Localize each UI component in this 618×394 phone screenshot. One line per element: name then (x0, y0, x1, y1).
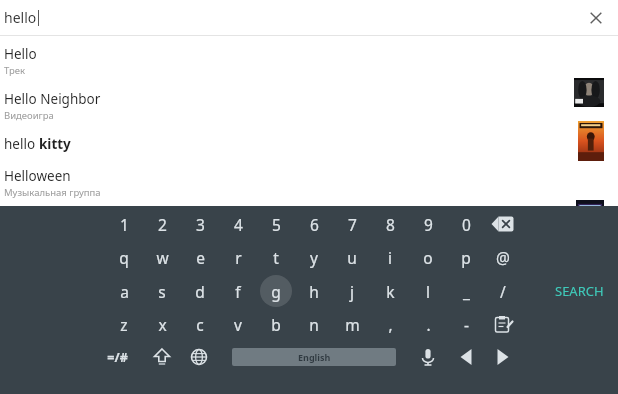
button[interactable]: w (143, 240, 181, 274)
staticText: j (350, 281, 354, 302)
button[interactable]: f (219, 274, 257, 308)
button[interactable]: Backspace (486, 211, 520, 237)
button[interactable]: SEARCH (540, 275, 618, 307)
staticText: y (310, 247, 318, 268)
staticText: 3 (196, 214, 205, 235)
staticText: English (298, 351, 331, 363)
staticText: Видеоигра (4, 109, 54, 122)
button[interactable]: Hello Neighbor (0, 86, 618, 130)
button[interactable]: . (409, 307, 447, 341)
button[interactable]: g (257, 274, 295, 308)
button[interactable]: 8 (371, 207, 409, 241)
staticText: 0 (462, 214, 471, 235)
button[interactable]: =/# (98, 340, 136, 374)
staticText: SEARCH (555, 282, 604, 300)
staticText: 6 (310, 214, 319, 235)
button[interactable]: o (409, 240, 447, 274)
staticText: 8 (386, 214, 395, 235)
button[interactable]: Clear search (574, 0, 618, 35)
button[interactable]: r (219, 240, 257, 274)
staticText: hello (4, 135, 39, 153)
button[interactable]: n (295, 307, 333, 341)
staticText: s (158, 281, 166, 302)
button[interactable]: 3 (181, 207, 219, 241)
button[interactable]: 9 (409, 207, 447, 241)
button[interactable]: / (484, 274, 522, 308)
staticText: i (388, 247, 392, 268)
button[interactable]: e (181, 240, 219, 274)
button[interactable]: 2 (143, 207, 181, 241)
staticText: t (273, 247, 279, 268)
staticText: z (120, 314, 128, 335)
button[interactable]: 0 (447, 207, 485, 241)
button[interactable]: @ (484, 240, 522, 274)
staticText: m (345, 314, 360, 335)
staticText: kitty (39, 135, 71, 153)
button[interactable]: u (333, 240, 371, 274)
button[interactable]: q (105, 240, 143, 274)
staticText: v (234, 314, 242, 335)
button[interactable]: English (232, 348, 396, 366)
staticText: f (235, 281, 241, 302)
button[interactable]: j (333, 274, 371, 308)
staticText: hello (4, 8, 37, 27)
staticText: a (120, 281, 129, 302)
button[interactable]: Hello (0, 41, 618, 85)
button[interactable]: k (371, 274, 409, 308)
button[interactable]: Change language (184, 343, 214, 371)
button[interactable]: s (143, 274, 181, 308)
staticText: 9 (424, 214, 433, 235)
button[interactable]: 1 (105, 207, 143, 241)
button[interactable]: - (447, 307, 485, 341)
button[interactable]: 6 (295, 207, 333, 241)
button[interactable]: z (105, 307, 143, 341)
staticText: l (426, 281, 430, 302)
button[interactable]: 4 (219, 207, 257, 241)
button[interactable]: Move right (488, 343, 518, 371)
button[interactable]: c (181, 307, 219, 341)
button[interactable]: Move left (451, 343, 481, 371)
staticText: Helloween (4, 167, 71, 185)
button[interactable]: h (295, 274, 333, 308)
button[interactable]: b (257, 307, 295, 341)
button[interactable]: m (333, 307, 371, 341)
button[interactable]: hello (0, 0, 574, 35)
staticText: 7 (348, 214, 357, 235)
staticText: 2 (158, 214, 167, 235)
button[interactable]: a (105, 274, 143, 308)
staticText: . (426, 314, 431, 335)
staticText: @ (496, 247, 510, 268)
button[interactable]: Shift (147, 343, 177, 371)
button[interactable]: t (257, 240, 295, 274)
button[interactable]: 7 (333, 207, 371, 241)
staticText: n (309, 314, 319, 335)
staticText: , (388, 314, 393, 335)
button[interactable]: d (181, 274, 219, 308)
staticText: q (119, 247, 129, 268)
staticText: 1 (120, 214, 129, 235)
staticText: b (271, 314, 281, 335)
staticText: r (235, 247, 242, 268)
button[interactable]: i (371, 240, 409, 274)
button[interactable]: , (371, 307, 409, 341)
staticText: - (464, 314, 469, 335)
button[interactable]: l (409, 274, 447, 308)
button[interactable]: x (143, 307, 181, 341)
button[interactable]: Voice input (413, 343, 443, 371)
button[interactable]: 5 (257, 207, 295, 241)
staticText: k (386, 281, 395, 302)
staticText: 5 (272, 214, 281, 235)
staticText: Hello Neighbor (4, 90, 101, 108)
button[interactable]: _ (447, 274, 485, 308)
staticText: h (309, 281, 319, 302)
button[interactable]: hello (0, 131, 618, 165)
staticText: Трек (4, 64, 26, 77)
button[interactable]: v (219, 307, 257, 341)
staticText: d (195, 281, 205, 302)
staticText: Музыкальная группа (4, 186, 101, 199)
staticText: Hello (4, 45, 37, 63)
button[interactable]: Helloween (0, 163, 618, 207)
button[interactable]: y (295, 240, 333, 274)
button[interactable]: p (447, 240, 485, 274)
button[interactable]: Clipboard (488, 310, 518, 338)
